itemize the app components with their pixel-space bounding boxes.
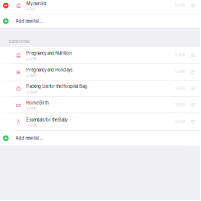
staticText: 12/11/19 (175, 87, 185, 90)
button[interactable]: Home Birth (0, 97, 200, 113)
staticText: 12/11/19 (175, 120, 185, 123)
staticText: Essentials for the Baby (26, 117, 67, 122)
staticText: ✓ (26, 123, 29, 128)
staticText: 0/12 (30, 73, 36, 78)
staticText: 12/11/19 (175, 103, 185, 106)
staticText: ✓ (26, 106, 29, 111)
staticText: 12/11/19 (175, 4, 185, 7)
staticText: Pregnancy and Holidays (26, 67, 72, 72)
staticText: ✓ (26, 57, 29, 61)
staticText: Packing List for the Hospital Bag (26, 84, 87, 89)
button[interactable]: Essentials for the Baby (0, 113, 200, 130)
staticText: My own list (26, 1, 46, 6)
button[interactable]: Packing List for the Hospital Bag (0, 80, 200, 96)
staticText: ✓ (26, 90, 29, 94)
button[interactable]: Add new list ... (0, 131, 200, 146)
staticText: 0/24 (30, 90, 37, 94)
button[interactable]: My own list (0, 0, 200, 14)
button[interactable]: Pregnancy and Holidays (0, 64, 200, 80)
button[interactable]: Pregnancy and Nutrition (0, 47, 200, 63)
button[interactable]: Add new list ... (0, 14, 200, 28)
staticText: SUGGESTIONS (8, 40, 29, 44)
staticText: ✓ (26, 73, 29, 78)
staticText: Add new list ... (16, 136, 43, 141)
staticText: Add new list ... (16, 19, 43, 24)
staticText: 0/16 (30, 106, 36, 111)
staticText: ✓ (26, 7, 29, 11)
staticText: 0/3 (30, 7, 35, 11)
staticText: Home Birth (26, 100, 48, 105)
staticText: 12/11/19 (175, 53, 185, 57)
staticText: 0/18 (30, 57, 36, 61)
staticText: 0/30 (30, 123, 37, 128)
staticText: 12/11/19 (175, 70, 185, 74)
staticText: Pregnancy and Nutrition (26, 51, 71, 56)
